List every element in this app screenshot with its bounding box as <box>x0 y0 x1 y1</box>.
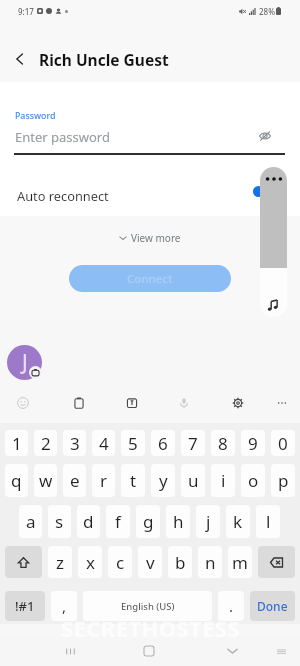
staticText: r <box>100 469 108 492</box>
button[interactable]: View more <box>0 230 300 246</box>
button[interactable]: p <box>271 464 295 497</box>
staticText: b <box>175 551 186 574</box>
button[interactable]: h <box>166 505 190 538</box>
button[interactable]: w <box>34 464 57 497</box>
staticText: e <box>70 469 80 492</box>
staticText: Enter password <box>15 128 110 146</box>
button[interactable]: z <box>48 546 72 578</box>
staticText: 1 <box>12 432 22 455</box>
staticText: q <box>11 469 22 492</box>
staticText: English (US) <box>121 600 175 613</box>
button[interactable]: q <box>5 464 28 497</box>
button[interactable]: 5 <box>121 430 145 456</box>
button[interactable]: b <box>168 546 192 578</box>
staticText: c <box>116 551 125 574</box>
staticText: 28% <box>259 6 275 17</box>
button[interactable]: Recents <box>58 639 82 663</box>
button[interactable]: d <box>77 505 100 538</box>
button[interactable]: g <box>136 505 160 538</box>
staticText: Rich Uncle Guest <box>39 49 169 70</box>
button[interactable]: Home <box>137 639 161 663</box>
staticText: View more <box>131 231 181 245</box>
button[interactable]: 2 <box>34 430 57 456</box>
staticText: 9:17 <box>18 6 34 17</box>
button[interactable]: 0 <box>271 430 295 456</box>
button[interactable]: English (US) <box>83 591 212 621</box>
staticText: s <box>55 510 64 533</box>
button[interactable]: . <box>218 591 244 621</box>
staticText: j <box>206 510 211 533</box>
button[interactable]: r <box>92 464 115 497</box>
staticText: y <box>159 469 168 492</box>
staticText: 2 <box>41 432 51 455</box>
staticText: . <box>229 596 234 616</box>
button[interactable]: f <box>106 505 130 538</box>
button[interactable]: m <box>228 546 252 578</box>
button[interactable]: Done <box>250 591 295 621</box>
staticText: J <box>22 348 28 377</box>
staticText: Connect <box>127 271 173 287</box>
staticText: w <box>39 469 53 492</box>
button[interactable]: u <box>181 464 205 497</box>
button[interactable]: l <box>256 505 280 538</box>
button[interactable]: Hide keyboard <box>269 639 293 663</box>
staticText: 8 <box>218 432 228 455</box>
button[interactable]: !#1 <box>5 591 45 621</box>
staticText: m <box>232 551 248 574</box>
button[interactable]: Text <box>121 392 143 414</box>
staticText: 7 <box>188 432 198 455</box>
button[interactable]: Shift <box>5 546 42 578</box>
staticText: 4 <box>99 432 109 455</box>
button[interactable]: Settings <box>227 392 249 414</box>
button[interactable]: j <box>196 505 220 538</box>
button[interactable]: , <box>51 591 77 621</box>
button[interactable]: Show password <box>255 126 275 146</box>
button[interactable]: Connect <box>69 265 231 292</box>
button[interactable]: t <box>121 464 145 497</box>
button[interactable]: Emoji <box>12 392 34 414</box>
staticText: d <box>83 510 94 533</box>
staticText: v <box>146 551 155 574</box>
staticText: n <box>205 551 216 574</box>
button[interactable]: 6 <box>151 430 175 456</box>
button[interactable]: e <box>63 464 86 497</box>
staticText: SECRETHOSTESS <box>61 613 240 643</box>
button[interactable]: o <box>241 464 265 497</box>
staticText: 3 <box>70 432 80 455</box>
button[interactable]: Back <box>220 639 244 663</box>
button[interactable]: 8 <box>211 430 235 456</box>
button[interactable]: a <box>19 505 42 538</box>
button[interactable]: Profile <box>7 345 42 380</box>
button[interactable]: Back <box>9 48 31 70</box>
staticText: o <box>248 469 259 492</box>
staticText: 6 <box>158 432 168 455</box>
staticText: x <box>86 551 95 574</box>
button[interactable]: c <box>108 546 132 578</box>
button[interactable]: x <box>78 546 102 578</box>
staticText: t <box>130 469 137 492</box>
button[interactable]: 1 <box>5 430 28 456</box>
staticText: k <box>233 510 243 533</box>
button[interactable]: 3 <box>63 430 86 456</box>
staticText: Password <box>15 110 56 122</box>
staticText: h <box>173 510 184 533</box>
staticText: u <box>188 469 199 492</box>
button[interactable]: i <box>211 464 235 497</box>
button[interactable]: Music player <box>260 167 287 317</box>
staticText: i <box>221 469 226 492</box>
button[interactable]: s <box>48 505 71 538</box>
button[interactable]: 7 <box>181 430 205 456</box>
button[interactable]: Auto reconnect <box>0 180 300 210</box>
staticText: Done <box>257 598 288 614</box>
button[interactable]: k <box>226 505 250 538</box>
button[interactable]: 9 <box>241 430 265 456</box>
button[interactable]: y <box>151 464 175 497</box>
button[interactable]: n <box>198 546 222 578</box>
button[interactable]: Clipboard <box>68 392 90 414</box>
button[interactable]: Voice input <box>173 392 195 414</box>
button[interactable]: More options <box>271 392 293 414</box>
button[interactable]: v <box>138 546 162 578</box>
staticText: p <box>278 469 289 492</box>
button[interactable]: Backspace <box>258 546 295 578</box>
button[interactable]: 4 <box>92 430 115 456</box>
